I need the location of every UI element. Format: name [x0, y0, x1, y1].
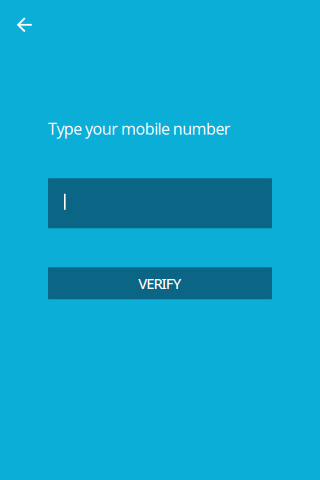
button[interactable]: Back — [7, 7, 43, 43]
button[interactable]: Mobile number — [48, 178, 272, 228]
button[interactable]: VERIFY — [48, 267, 272, 299]
staticText: Type your mobile number — [48, 118, 231, 139]
staticText: VERIFY — [138, 273, 182, 293]
